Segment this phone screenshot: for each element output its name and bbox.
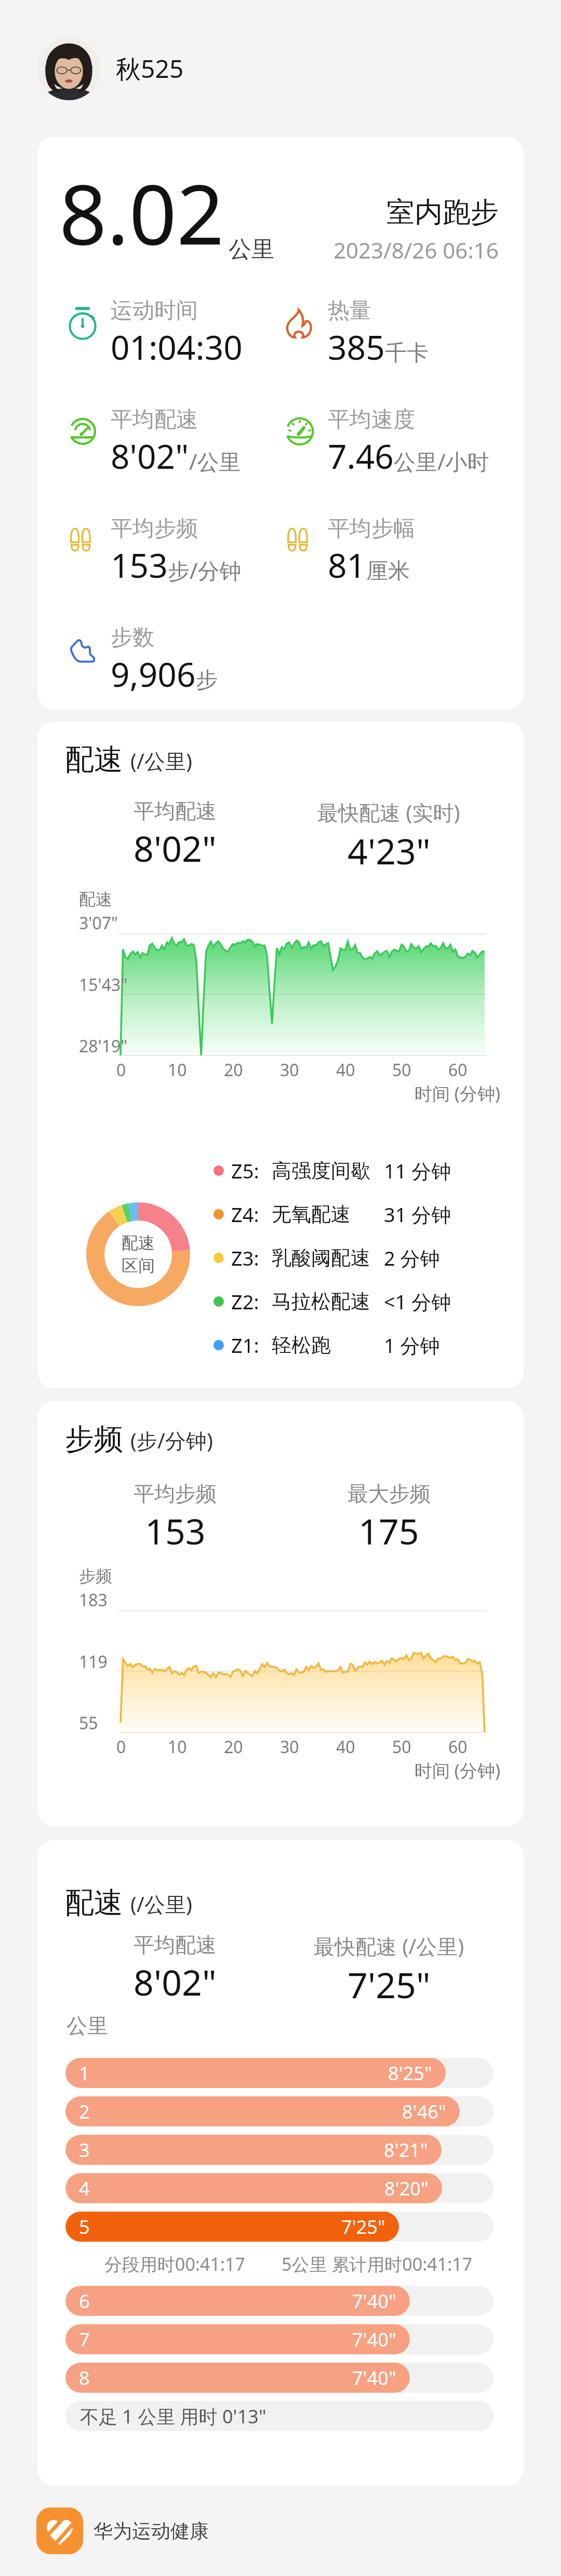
staticText: 步频 bbox=[65, 1421, 123, 1458]
button[interactable]: Z3: bbox=[213, 1236, 440, 1280]
staticText: 时间 (分钟) bbox=[415, 1081, 501, 1105]
staticText: 3 bbox=[79, 2137, 90, 2163]
staticText: 2 bbox=[79, 2099, 90, 2124]
staticText: 最快配速 (/公里) bbox=[314, 1932, 464, 1960]
staticText: 8'20" bbox=[384, 2176, 429, 2201]
staticText: 153 bbox=[145, 1507, 206, 1555]
staticText: 28'19" bbox=[79, 1035, 128, 1057]
button[interactable]: Z5: bbox=[213, 1149, 451, 1192]
staticText: 7'25" bbox=[341, 2214, 385, 2240]
staticText: Z5: bbox=[231, 1157, 259, 1184]
staticText: 室内跑步 bbox=[386, 195, 499, 230]
staticText: 平均速度 bbox=[328, 406, 415, 433]
staticText: /公里 bbox=[189, 446, 241, 476]
staticText: 385 bbox=[328, 324, 385, 370]
button[interactable]: 2 bbox=[65, 2096, 493, 2126]
staticText: 10 bbox=[168, 1736, 187, 1758]
staticText: 秋525 bbox=[116, 51, 184, 86]
staticText: 2023/8/26 06:16 bbox=[333, 235, 499, 265]
staticText: 11 分钟 bbox=[384, 1157, 451, 1184]
staticText: 4 bbox=[79, 2176, 90, 2201]
button[interactable]: 7 bbox=[65, 2324, 493, 2354]
staticText: 配速 bbox=[79, 889, 112, 910]
staticText: 步频 bbox=[79, 1566, 112, 1587]
staticText: 8'21" bbox=[384, 2137, 428, 2163]
staticText: 高强度间歇 bbox=[272, 1158, 370, 1183]
button[interactable]: 步数 bbox=[61, 617, 218, 697]
button[interactable]: 3 bbox=[65, 2135, 493, 2165]
button[interactable]: 平均步幅 bbox=[278, 508, 415, 588]
button[interactable]: 平均配速 bbox=[61, 399, 241, 479]
staticText: 20 bbox=[224, 1059, 243, 1081]
staticText: 1 分钟 bbox=[384, 1332, 440, 1359]
staticText: 40 bbox=[336, 1736, 355, 1758]
staticText: 0 bbox=[116, 1736, 126, 1758]
staticText: 运动时间 bbox=[111, 297, 198, 324]
button[interactable]: Z1: bbox=[213, 1323, 440, 1367]
staticText: 6 bbox=[79, 2288, 90, 2314]
staticText: (/公里) bbox=[130, 747, 192, 775]
staticText: 7'40" bbox=[352, 2288, 396, 2314]
button[interactable]: 热量 bbox=[278, 290, 429, 370]
staticText: 20 bbox=[224, 1736, 243, 1758]
staticText: 4'23" bbox=[348, 826, 431, 875]
staticText: 平均配速 bbox=[133, 1932, 217, 1958]
staticText: 8'02" bbox=[133, 1958, 217, 2006]
staticText: 最大步频 bbox=[348, 1481, 431, 1507]
staticText: 7'25" bbox=[348, 1960, 431, 2009]
button[interactable]: 4 bbox=[65, 2173, 493, 2203]
staticText: 30 bbox=[280, 1059, 299, 1081]
staticText: 2 分钟 bbox=[384, 1244, 440, 1271]
staticText: 最快配速 (实时) bbox=[317, 798, 460, 826]
staticText: <1 分钟 bbox=[384, 1288, 451, 1315]
staticText: 配速 bbox=[65, 741, 123, 778]
staticText: (/公里) bbox=[130, 1890, 192, 1918]
staticText: 8'25" bbox=[388, 2060, 432, 2086]
staticText: 50 bbox=[392, 1736, 411, 1758]
staticText: (步/分钟) bbox=[130, 1426, 213, 1455]
staticText: 8'02" bbox=[111, 433, 189, 479]
staticText: Z2: bbox=[231, 1288, 259, 1315]
button[interactable]: Z2: bbox=[213, 1280, 451, 1323]
staticText: 10 bbox=[168, 1059, 187, 1081]
staticText: 乳酸阈配速 bbox=[272, 1245, 370, 1270]
staticText: 平均步频 bbox=[111, 515, 198, 543]
button[interactable]: 8 bbox=[65, 2363, 493, 2393]
staticText: 步 bbox=[196, 667, 218, 694]
staticText: 区间 bbox=[122, 1255, 155, 1276]
button[interactable]: Z4: bbox=[213, 1192, 451, 1236]
staticText: 公里 bbox=[229, 235, 274, 264]
staticText: 30 bbox=[280, 1736, 299, 1758]
button[interactable]: 平均步频 bbox=[61, 508, 242, 588]
staticText: 50 bbox=[392, 1059, 411, 1081]
staticText: 公里 bbox=[66, 2013, 108, 2039]
staticText: 81 bbox=[328, 543, 366, 588]
staticText: 15'43" bbox=[79, 973, 128, 996]
staticText: 9,906 bbox=[111, 652, 196, 697]
staticText: Z4: bbox=[231, 1201, 259, 1228]
button[interactable]: 1 bbox=[65, 2058, 493, 2088]
staticText: 热量 bbox=[328, 297, 371, 324]
staticText: 时间 (分钟) bbox=[415, 1758, 501, 1782]
staticText: 119 bbox=[79, 1650, 108, 1673]
button[interactable]: 运动时间 bbox=[61, 290, 243, 370]
staticText: 175 bbox=[358, 1507, 419, 1555]
staticText: 平均配速 bbox=[111, 406, 198, 433]
button[interactable]: 5 bbox=[65, 2212, 493, 2242]
staticText: 平均步幅 bbox=[328, 515, 415, 543]
staticText: 7'40" bbox=[352, 2365, 396, 2391]
staticText: 不足 1 公里 用时 0'13" bbox=[80, 2404, 266, 2429]
staticText: 平均步频 bbox=[133, 1481, 217, 1507]
button[interactable]: 6 bbox=[65, 2286, 493, 2316]
button[interactable]: 平均速度 bbox=[278, 399, 489, 479]
staticText: 7 bbox=[79, 2327, 90, 2352]
staticText: 60 bbox=[448, 1736, 468, 1758]
staticText: 8'46" bbox=[402, 2099, 446, 2124]
staticText: 轻松跑 bbox=[272, 1333, 331, 1358]
staticText: 千卡 bbox=[385, 340, 429, 367]
staticText: 配速 bbox=[65, 1884, 123, 1921]
staticText: Z1: bbox=[231, 1332, 259, 1359]
staticText: 1 bbox=[79, 2060, 90, 2086]
staticText: 01:04:30 bbox=[111, 324, 243, 370]
staticText: 7'40" bbox=[352, 2327, 396, 2352]
